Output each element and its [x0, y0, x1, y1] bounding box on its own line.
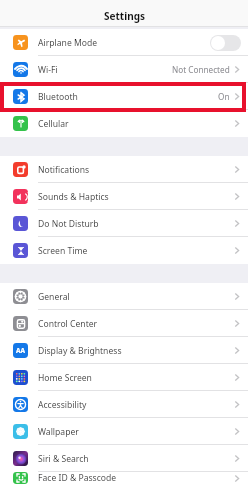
button[interactable]: Wallpaper	[0, 418, 248, 445]
staticText: Not Connected	[172, 64, 230, 75]
button[interactable]: Accessibility	[0, 391, 248, 418]
button[interactable]: Do Not Disturb	[0, 210, 248, 237]
staticText: Sounds & Haptics	[38, 191, 109, 203]
button[interactable]: Notifications	[0, 156, 248, 183]
staticText: Settings	[104, 9, 145, 23]
staticText: Control Center	[38, 318, 98, 330]
staticText: Accessibility	[38, 399, 87, 411]
button[interactable]: Screen Time	[0, 237, 248, 264]
button[interactable]: Control Center	[0, 310, 248, 337]
staticText: General	[38, 291, 70, 303]
button[interactable]: General	[0, 283, 248, 310]
staticText: Do Not Disturb	[38, 218, 99, 230]
staticText: AA	[16, 346, 25, 355]
button[interactable]: Wi-Fi	[0, 56, 248, 83]
button[interactable]: Cellular	[0, 110, 248, 137]
button[interactable]: Face ID & Passcode	[0, 472, 248, 484]
button[interactable]: Sounds & Haptics	[0, 183, 248, 210]
staticText: Cellular	[38, 118, 69, 130]
staticText: Bluetooth	[38, 91, 78, 103]
button[interactable]: Siri & Search	[0, 445, 248, 472]
other: Airplane Mode toggle	[210, 35, 241, 51]
staticText: Siri & Search	[38, 453, 89, 465]
button[interactable]: AA	[0, 337, 248, 364]
staticText: Screen Time	[38, 245, 88, 257]
staticText: On	[218, 91, 230, 102]
button[interactable]: Airplane Mode	[0, 29, 248, 56]
staticText: Airplane Mode	[38, 37, 98, 49]
staticText: Wi-Fi	[38, 64, 58, 76]
staticText: Face ID & Passcode	[38, 472, 117, 484]
staticText: Display & Brightness	[38, 345, 122, 357]
staticText: Notifications	[38, 164, 90, 176]
button[interactable]: Bluetooth	[0, 83, 248, 110]
button[interactable]: Home Screen	[0, 364, 248, 391]
staticText: Home Screen	[38, 372, 92, 384]
staticText: Wallpaper	[38, 426, 79, 438]
